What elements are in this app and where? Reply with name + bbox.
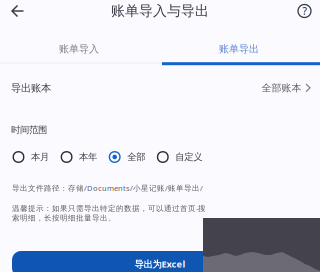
button[interactable]: 本年 (61, 150, 97, 164)
button[interactable]: 全部 (109, 150, 145, 164)
button[interactable]: Help (295, 1, 314, 20)
button[interactable]: 导出账本 (0, 73, 320, 103)
button[interactable]: 账单导入 (0, 37, 159, 61)
staticText: ? (302, 4, 306, 18)
staticText: 时间范围 (11, 124, 47, 136)
button[interactable]: 账单导出 (159, 37, 319, 61)
staticText: 温馨提示：如果只需导出特定的数据，可以通过首页-搜索明细，长按明细批量导出。 (12, 203, 206, 223)
staticText: 本月 (31, 151, 49, 163)
staticText: 账单导入与导出 (111, 2, 209, 20)
button[interactable]: Back (6, 0, 29, 21)
staticText: 自定义 (175, 151, 202, 163)
button[interactable]: 本月 (12, 150, 49, 164)
staticText: 导出账本 (11, 81, 51, 94)
staticText: 本年 (79, 151, 97, 163)
staticText: 导出为Excel (134, 258, 185, 270)
staticText: 账单导入 (59, 43, 99, 55)
staticText: 全部账本 (261, 82, 301, 94)
button[interactable]: 自定义 (157, 150, 202, 164)
staticText: 全部 (127, 151, 145, 163)
staticText: 账单导出 (219, 43, 259, 55)
button[interactable]: 导出为Excel (12, 251, 308, 272)
staticText: 导出文件路径：存储/Documents/小星记账/账单导出/ (12, 183, 203, 193)
